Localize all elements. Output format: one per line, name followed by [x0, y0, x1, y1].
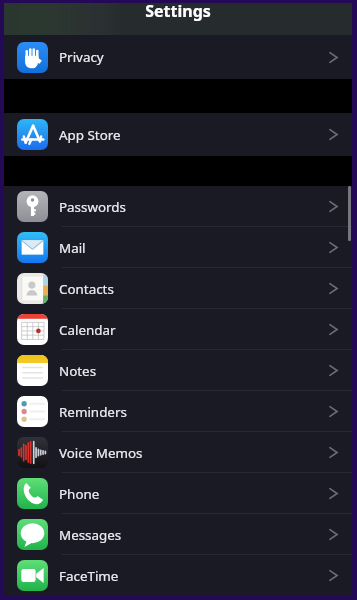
staticText: Privacy: [59, 48, 104, 66]
button[interactable]: Messages: [4, 514, 352, 555]
staticText: Contacts: [59, 280, 114, 298]
staticText: Phone: [59, 485, 100, 503]
staticText: Passwords: [59, 198, 126, 216]
button[interactable]: Mail: [4, 227, 352, 268]
button[interactable]: Reminders: [4, 391, 352, 432]
button[interactable]: Voice Memos: [4, 432, 352, 473]
staticText: Messages: [59, 526, 122, 544]
staticText: Settings: [145, 0, 211, 22]
button[interactable]: Phone: [4, 473, 352, 514]
button[interactable]: FaceTime: [4, 555, 352, 596]
staticText: Reminders: [59, 403, 127, 421]
button[interactable]: Calendar: [4, 309, 352, 350]
button[interactable]: Passwords: [4, 186, 352, 227]
staticText: Mail: [59, 239, 86, 257]
staticText: Voice Memos: [59, 444, 143, 462]
button[interactable]: App Store: [4, 113, 352, 156]
button[interactable]: Contacts: [4, 268, 352, 309]
staticText: App Store: [59, 126, 121, 144]
staticText: Notes: [59, 362, 97, 380]
button[interactable]: Notes: [4, 350, 352, 391]
staticText: FaceTime: [59, 567, 119, 585]
staticText: Calendar: [59, 321, 116, 339]
button[interactable]: Privacy: [4, 35, 352, 79]
